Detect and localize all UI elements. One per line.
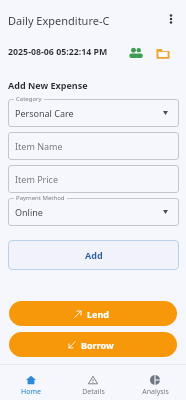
staticText: Category bbox=[16, 95, 42, 103]
staticText: Borrow bbox=[81, 339, 114, 351]
button[interactable] bbox=[8, 165, 179, 193]
button[interactable] bbox=[8, 99, 179, 127]
staticText: Add bbox=[85, 249, 103, 261]
staticText: Add New Expense bbox=[8, 79, 88, 91]
staticText: Daily Expenditure-C bbox=[8, 13, 110, 28]
staticText: Analysis bbox=[142, 387, 169, 397]
button[interactable] bbox=[8, 132, 179, 160]
staticText: Item Name bbox=[15, 140, 63, 152]
button[interactable]: Groups bbox=[126, 43, 146, 63]
button[interactable]: Details bbox=[62, 365, 124, 397]
button[interactable]: Lend bbox=[9, 301, 177, 326]
staticText: Details bbox=[82, 387, 105, 397]
button[interactable]: Add bbox=[8, 240, 179, 270]
staticText: Item Price bbox=[15, 173, 59, 185]
button[interactable]: Analysis bbox=[124, 365, 186, 397]
button[interactable]: Home bbox=[0, 365, 62, 397]
staticText: Home bbox=[21, 387, 41, 397]
button[interactable]: Folders bbox=[153, 43, 173, 63]
staticText: Lend bbox=[87, 308, 109, 320]
button[interactable] bbox=[8, 198, 179, 226]
button[interactable]: More options bbox=[160, 8, 182, 30]
staticText: Online bbox=[15, 206, 43, 218]
staticText: Payment Method bbox=[16, 194, 65, 202]
staticText: Personal Care bbox=[15, 107, 74, 119]
button[interactable]: Borrow bbox=[9, 332, 177, 357]
staticText: 2025-08-06 05:22:14 PM bbox=[8, 46, 108, 58]
